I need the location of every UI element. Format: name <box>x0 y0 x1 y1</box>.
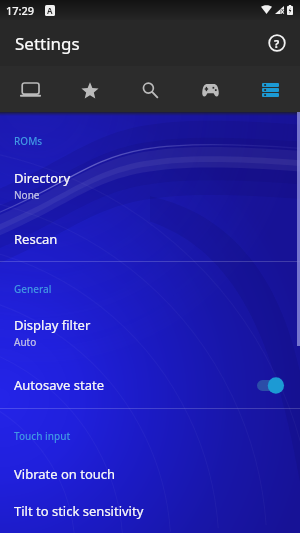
button[interactable]: Display filter <box>0 308 300 362</box>
staticText: Display filter <box>14 316 91 334</box>
staticText: Touch input <box>14 429 71 443</box>
button[interactable]: Autosave state <box>0 362 300 408</box>
button[interactable]: Computers <box>0 68 60 112</box>
staticText: Directory <box>14 169 71 187</box>
staticText: Settings <box>15 32 80 55</box>
staticText: ROMs <box>14 134 43 148</box>
button[interactable]: Games <box>180 68 240 112</box>
button[interactable]: Vibrate on touch <box>0 455 300 492</box>
staticText: Tilt to stick sensitivity <box>14 502 144 520</box>
staticText: General <box>14 282 52 296</box>
button[interactable]: Search <box>120 68 180 112</box>
button[interactable]: Rescan <box>0 216 300 261</box>
button[interactable]: Directory <box>0 160 300 216</box>
staticText: 17:29 <box>6 3 35 18</box>
button[interactable]: Help <box>261 27 293 59</box>
button[interactable]: Settings <box>240 68 300 112</box>
staticText: ? <box>274 36 280 51</box>
staticText: Autosave state <box>14 376 257 394</box>
button[interactable]: Tilt to stick sensitivity <box>0 492 300 529</box>
button[interactable]: Favourites <box>60 68 120 112</box>
staticText: Rescan <box>14 230 58 248</box>
staticText: Auto <box>14 335 37 349</box>
staticText: A <box>47 5 53 16</box>
staticText: None <box>14 188 40 202</box>
staticText: Vibrate on touch <box>14 465 116 483</box>
